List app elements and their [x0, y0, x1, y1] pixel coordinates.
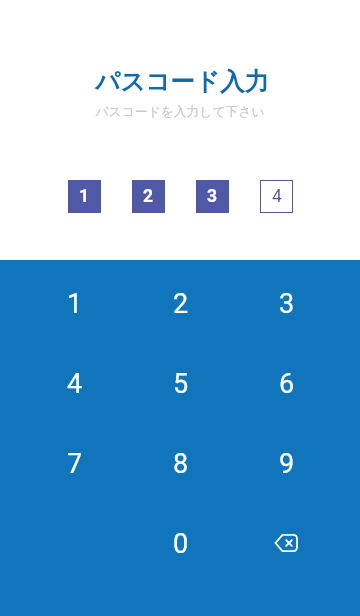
staticText: 9 [279, 448, 295, 480]
staticText: 7 [67, 448, 83, 480]
staticText: 2 [143, 186, 154, 207]
staticText: パスコード入力 [4, 66, 360, 97]
staticText: 1 [79, 186, 90, 207]
button[interactable]: Backspace [234, 504, 340, 584]
staticText: パスコードを入力して下さい [0, 104, 360, 120]
staticText: 3 [279, 288, 295, 320]
staticText: 3 [207, 186, 218, 207]
button[interactable]: 8 [128, 424, 234, 504]
button[interactable]: 6 [234, 344, 340, 424]
button[interactable]: 0 [128, 504, 234, 584]
button[interactable]: 3 [196, 180, 229, 213]
button[interactable]: 5 [128, 344, 234, 424]
staticText: 8 [173, 448, 189, 480]
staticText: 1 [67, 288, 83, 320]
button[interactable]: 9 [234, 424, 340, 504]
button[interactable]: 2 [128, 264, 234, 344]
button[interactable]: 2 [132, 180, 165, 213]
button[interactable]: 7 [22, 424, 128, 504]
staticText: 2 [173, 288, 189, 320]
staticText: 4 [67, 368, 83, 400]
staticText: 5 [173, 368, 189, 400]
button[interactable]: 1 [68, 180, 101, 213]
button[interactable]: 3 [234, 264, 340, 344]
button[interactable]: 4 [22, 344, 128, 424]
staticText: 6 [279, 368, 295, 400]
button[interactable]: 1 [22, 264, 128, 344]
staticText: 0 [173, 528, 189, 560]
button[interactable]: 4 [260, 180, 293, 213]
staticText: 4 [272, 186, 282, 207]
